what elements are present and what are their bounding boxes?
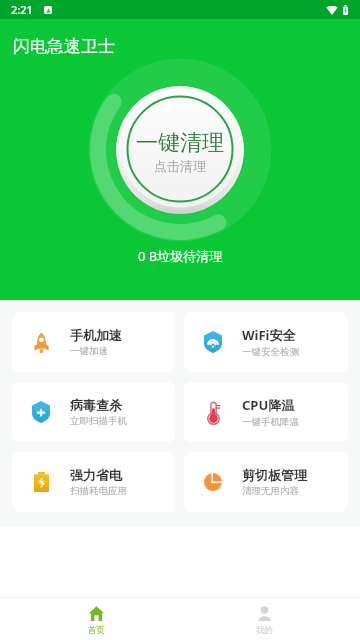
staticText: 闪电急速卫士 bbox=[13, 36, 115, 57]
staticText: 一键手机降温 bbox=[242, 416, 299, 428]
staticText: 清理无用内容 bbox=[242, 485, 299, 497]
staticText: 首页 bbox=[88, 625, 105, 636]
staticText: 点击清理 bbox=[154, 158, 206, 174]
button[interactable]: 剪切板管理 bbox=[184, 452, 348, 512]
button[interactable]: 首页 bbox=[12, 601, 180, 640]
button[interactable]: 一键清理 bbox=[116, 86, 244, 214]
staticText: 手机加速 bbox=[70, 327, 122, 343]
staticText: 0 B垃圾待清理 bbox=[138, 247, 223, 265]
staticText: 一键清理 bbox=[136, 129, 224, 157]
staticText: 扫描耗电应用 bbox=[70, 485, 127, 497]
button[interactable]: 病毒查杀 bbox=[12, 382, 175, 442]
staticText: 立即扫描手机 bbox=[70, 415, 127, 427]
staticText: 剪切板管理 bbox=[242, 467, 307, 483]
staticText: 一键安全检测 bbox=[242, 346, 299, 358]
staticText: 2:21 bbox=[11, 2, 33, 17]
button[interactable]: 我的 bbox=[180, 601, 348, 640]
button[interactable]: WiFi安全 bbox=[184, 312, 348, 372]
staticText: CPU降温 bbox=[242, 396, 295, 414]
button[interactable]: 手机加速 bbox=[12, 312, 175, 372]
staticText: WiFi安全 bbox=[242, 326, 296, 344]
staticText: 病毒查杀 bbox=[70, 397, 122, 413]
staticText: 我的 bbox=[256, 625, 273, 636]
staticText: 强力省电 bbox=[70, 467, 122, 483]
staticText: 一键加速 bbox=[70, 345, 108, 357]
button[interactable]: 强力省电 bbox=[12, 452, 175, 512]
button[interactable]: CPU降温 bbox=[184, 382, 348, 442]
